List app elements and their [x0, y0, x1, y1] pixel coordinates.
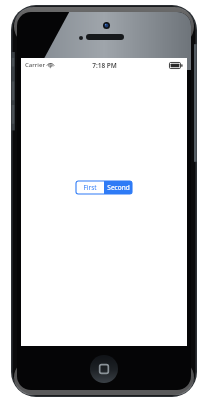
staticText: Second [107, 183, 130, 192]
staticText: First [83, 183, 97, 192]
button[interactable]: Second [104, 181, 132, 194]
staticText: 7:18 PM [92, 61, 117, 70]
button[interactable]: First [76, 181, 104, 194]
staticText: Carrier [25, 61, 45, 69]
other: Home [90, 355, 118, 383]
